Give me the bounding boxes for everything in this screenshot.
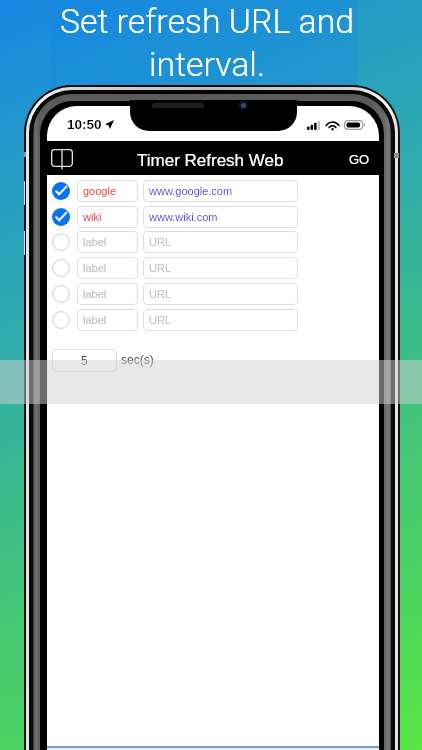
button[interactable]: 5 [52,349,117,372]
staticText: 5 [81,354,88,367]
button[interactable]: www.google.com [143,180,298,202]
staticText: 10:50 [67,117,102,132]
button[interactable]: GO [349,152,370,167]
staticText: URL [149,262,172,274]
staticText: google [83,185,117,197]
button[interactable]: label [77,231,138,253]
staticText: label [83,288,107,300]
button[interactable]: www.wiki.com [143,206,298,228]
staticText: Set refresh URL and interval. [0,2,418,84]
button[interactable]: Enabled [49,177,73,204]
button[interactable]: google [77,180,138,202]
staticText: label [83,314,107,326]
button[interactable]: URL [143,309,298,331]
button[interactable]: Bookmarks [47,143,77,173]
staticText: URL [149,236,172,248]
button[interactable]: wiki [77,206,138,228]
staticText: URL [149,288,172,300]
staticText: www.google.com [149,185,233,197]
staticText: GO [349,152,370,167]
button[interactable]: label [77,309,138,331]
button[interactable]: Disabled [49,228,73,255]
staticText: URL [149,314,172,326]
button[interactable]: Disabled [49,306,73,333]
button[interactable]: URL [143,283,298,305]
staticText: wiki [83,211,102,223]
button[interactable]: URL [143,257,298,279]
button[interactable]: label [77,283,138,305]
button[interactable]: URL [143,231,298,253]
staticText: label [83,262,107,274]
staticText: Timer Refresh Web [137,151,284,170]
button[interactable]: Disabled [49,254,73,281]
button[interactable]: label [77,257,138,279]
button[interactable]: Enabled [49,203,73,230]
staticText: label [83,236,107,248]
staticText: sec(s) [121,353,154,366]
staticText: www.wiki.com [149,211,218,223]
button[interactable]: Disabled [49,280,73,307]
